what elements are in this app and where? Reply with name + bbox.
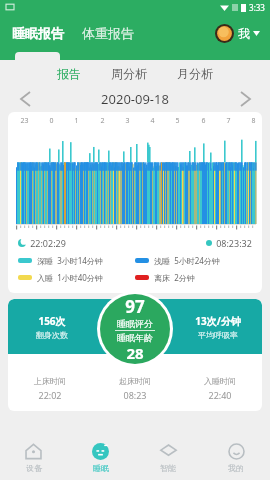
staticText: 13次/分钟 <box>195 314 241 328</box>
staticText: 2分钟 <box>174 272 195 283</box>
other: Devices <box>25 443 42 460</box>
staticText: 08:23 <box>123 389 147 401</box>
staticText: 设备 <box>26 463 42 473</box>
other: Smart <box>160 443 177 460</box>
staticText: 5 <box>175 116 180 126</box>
button[interactable]: 我 <box>213 21 262 46</box>
staticText: 我的 <box>228 463 244 473</box>
staticText: 智能 <box>160 463 176 473</box>
button[interactable]: Devices <box>0 436 67 480</box>
staticText: 8 <box>251 116 256 126</box>
staticText: 睡眠评分 <box>117 318 153 329</box>
staticText: 起床时间 <box>119 376 151 386</box>
staticText: 23 <box>20 116 29 126</box>
staticText: 1小时40分钟 <box>57 272 103 283</box>
other: Profile <box>228 443 245 460</box>
staticText: 6 <box>201 116 206 126</box>
staticText: 深睡 <box>37 256 53 266</box>
staticText: 入睡时间 <box>204 376 236 386</box>
other: Sleep <box>92 443 109 460</box>
button[interactable]: 体重报告 <box>80 21 136 45</box>
staticText: 平均呼吸率 <box>198 330 238 340</box>
staticText: 08:23:32 <box>216 237 252 249</box>
staticText: 22:02:29 <box>30 237 66 249</box>
staticText: 3 <box>125 116 130 126</box>
button[interactable]: 月分析 <box>173 63 217 84</box>
staticText: 睡眠年龄 <box>117 332 153 343</box>
staticText: 周分析 <box>111 66 147 81</box>
staticText: 3小时14分钟 <box>57 255 103 266</box>
button[interactable]: 周分析 <box>107 63 151 84</box>
button[interactable]: 97 <box>100 294 170 364</box>
staticText: 入睡 <box>37 273 53 283</box>
staticText: 上床时间 <box>34 376 66 386</box>
staticText: 2 <box>100 116 105 126</box>
staticText: 浅睡 <box>154 256 170 266</box>
button[interactable]: 报告 <box>53 63 85 84</box>
staticText: 28 <box>126 343 144 363</box>
staticText: 3:33 <box>249 2 265 13</box>
button[interactable]: 睡眠报告 <box>10 21 66 45</box>
staticText: 月分析 <box>177 66 213 81</box>
button[interactable]: Profile <box>202 436 270 480</box>
button[interactable]: Previous day <box>14 88 36 110</box>
staticText: 5小时24分钟 <box>174 255 220 266</box>
button[interactable]: Next day <box>234 88 256 110</box>
staticText: 报告 <box>57 66 81 81</box>
staticText: 体重报告 <box>82 25 134 41</box>
button[interactable]: Sleep <box>67 436 134 480</box>
staticText: 离床 <box>154 273 170 283</box>
staticText: 7 <box>226 116 231 126</box>
staticText: 翻身次数 <box>36 330 68 340</box>
staticText: 4 <box>150 116 155 126</box>
staticText: 睡眠报告 <box>12 25 64 41</box>
button[interactable]: Smart <box>134 436 202 480</box>
staticText: 22:40 <box>208 389 232 401</box>
staticText: 97 <box>125 295 145 318</box>
staticText: 156次 <box>38 314 66 328</box>
staticText: 我 <box>238 26 250 41</box>
staticText: 2020-09-18 <box>101 90 169 108</box>
staticText: 睡眠 <box>93 463 109 473</box>
staticText: 0 <box>49 116 54 126</box>
staticText: 22:02 <box>38 389 62 401</box>
staticText: 1 <box>74 116 79 126</box>
